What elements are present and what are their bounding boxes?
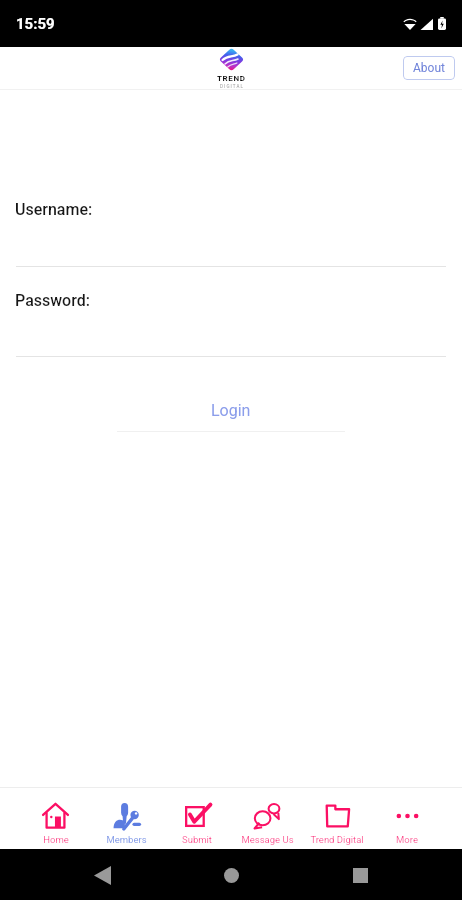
button[interactable]: Message Us: [232, 788, 302, 849]
staticText: Home: [43, 834, 69, 845]
button[interactable]: Trend Digital: [302, 788, 372, 849]
button[interactable]: Home: [210, 854, 252, 896]
staticText: About: [413, 61, 445, 75]
staticText: Submit: [182, 834, 212, 845]
button[interactable]: Back: [81, 854, 123, 896]
staticText: Members: [106, 834, 147, 845]
staticText: Trend Digital: [310, 834, 364, 845]
button[interactable]: Members: [91, 788, 162, 849]
button[interactable]: About: [403, 56, 455, 80]
button[interactable]: Home: [20, 788, 91, 849]
staticText: More: [396, 834, 418, 845]
button[interactable]: Submit: [162, 788, 232, 849]
staticText: TREND: [217, 74, 246, 83]
button[interactable]: Recents: [339, 854, 381, 896]
staticText: Password:: [15, 291, 90, 310]
button[interactable]: More: [372, 788, 442, 849]
staticText: Message Us: [241, 834, 294, 845]
staticText: 15:59: [16, 15, 55, 33]
staticText: Username:: [15, 200, 93, 219]
staticText: DIGITAL: [220, 84, 244, 89]
button[interactable]: Login: [117, 401, 345, 432]
staticText: Login: [211, 401, 251, 420]
